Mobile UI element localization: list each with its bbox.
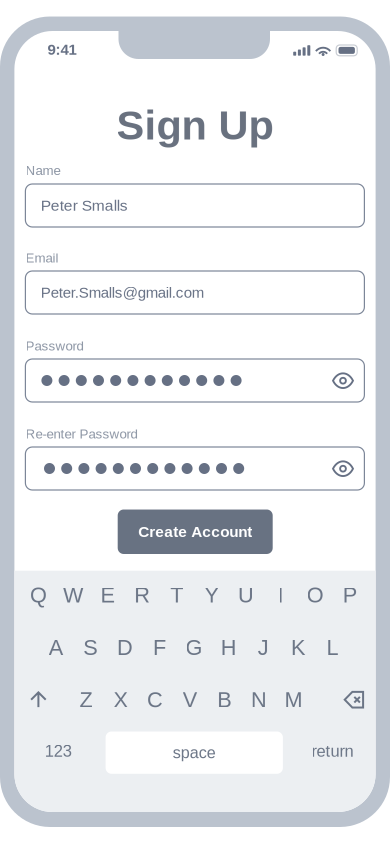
button[interactable]: Show password — [332, 373, 354, 389]
staticText: R — [134, 583, 150, 607]
button[interactable]: S — [73, 624, 108, 670]
staticText: H — [221, 635, 237, 659]
staticText: I — [278, 583, 284, 607]
button[interactable]: D — [108, 624, 142, 670]
button[interactable]: H — [211, 624, 246, 670]
staticText: D — [117, 635, 133, 659]
button[interactable]: Show re-entered password — [332, 461, 354, 477]
staticText: space — [173, 744, 216, 762]
staticText: X — [113, 688, 127, 712]
staticText: Z — [79, 688, 92, 712]
staticText: E — [101, 583, 115, 607]
button[interactable]: R — [125, 572, 159, 618]
button[interactable]: P — [332, 572, 367, 618]
button[interactable]: return — [293, 730, 371, 772]
staticText: P — [343, 583, 357, 607]
staticText: A — [49, 635, 63, 659]
button[interactable]: F — [142, 624, 177, 670]
staticText: 9:41 — [47, 41, 76, 58]
staticText: N — [251, 688, 267, 712]
staticText: J — [258, 635, 269, 659]
staticText: Name — [26, 163, 61, 178]
button[interactable]: X — [103, 677, 138, 723]
button[interactable]: T — [159, 572, 194, 618]
button[interactable]: V — [172, 677, 207, 723]
button[interactable]: E — [90, 572, 125, 618]
staticText: O — [307, 583, 324, 607]
button[interactable]: C — [138, 677, 172, 723]
button[interactable]: W — [56, 572, 90, 618]
staticText: Peter.Smalls@gmail.com — [41, 284, 204, 301]
staticText: Create Account — [138, 523, 252, 540]
staticText: Q — [30, 583, 47, 607]
staticText: L — [326, 635, 338, 659]
staticText: Password — [26, 339, 84, 353]
button[interactable]: Peter.Smalls@gmail.com — [25, 271, 364, 314]
staticText: G — [186, 635, 203, 659]
staticText: Re-enter Password — [26, 427, 138, 441]
button[interactable]: B — [207, 677, 242, 723]
button[interactable]: space — [106, 731, 283, 774]
button[interactable]: K — [281, 624, 315, 670]
staticText: 123 — [45, 742, 72, 760]
staticText: K — [291, 635, 305, 659]
staticText: W — [63, 583, 83, 607]
button[interactable] — [25, 359, 364, 402]
staticText: return — [311, 742, 353, 760]
staticText: V — [183, 688, 197, 712]
staticText: F — [153, 635, 166, 659]
staticText: S — [83, 635, 97, 659]
button[interactable]: Create Account — [118, 509, 273, 554]
button[interactable]: Shift — [21, 677, 56, 723]
staticText: Peter Smalls — [41, 197, 128, 214]
button[interactable]: A — [38, 624, 73, 670]
button[interactable]: U — [229, 572, 263, 618]
button[interactable]: M — [276, 677, 311, 723]
button[interactable]: Y — [194, 572, 229, 618]
button[interactable] — [25, 447, 364, 490]
button[interactable]: Q — [21, 572, 56, 618]
staticText: M — [284, 688, 302, 712]
staticText: Email — [26, 251, 59, 265]
button[interactable]: G — [177, 624, 211, 670]
button[interactable]: O — [298, 572, 332, 618]
button[interactable]: I — [263, 572, 298, 618]
button[interactable]: Peter Smalls — [25, 184, 364, 227]
button[interactable]: J — [246, 624, 281, 670]
staticText: Y — [204, 583, 218, 607]
staticText: T — [170, 583, 183, 607]
staticText: C — [147, 688, 163, 712]
button[interactable]: L — [315, 624, 350, 670]
staticText: B — [217, 688, 231, 712]
staticText: Sign Up — [116, 102, 273, 148]
button[interactable]: Backspace — [337, 677, 371, 723]
button[interactable]: N — [242, 677, 276, 723]
button[interactable]: Z — [69, 677, 103, 723]
staticText: U — [238, 583, 254, 607]
button[interactable]: 123 — [19, 730, 97, 772]
